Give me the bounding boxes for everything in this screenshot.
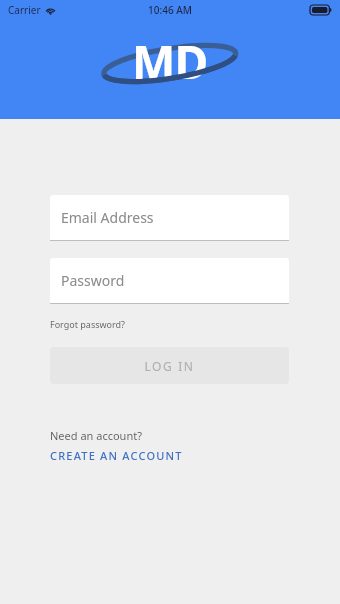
button[interactable]: Password	[50, 258, 289, 303]
staticText: Forgot password?	[50, 318, 126, 330]
button[interactable]: CREATE AN ACCOUNT	[50, 448, 183, 463]
staticText: Password	[61, 271, 125, 290]
button[interactable]: Email Address	[50, 195, 289, 240]
staticText: CREATE AN ACCOUNT	[50, 448, 183, 463]
button[interactable]: LOG IN	[50, 347, 289, 384]
other: MD logo	[95, 30, 245, 92]
staticText: Need an account?	[50, 428, 142, 443]
staticText: 10:46 AM	[148, 3, 192, 17]
staticText: Carrier	[8, 3, 41, 17]
staticText: Email Address	[61, 208, 154, 227]
staticText: MD	[132, 30, 208, 92]
staticText: LOG IN	[144, 358, 195, 374]
button[interactable]: Forgot password?	[50, 316, 126, 332]
